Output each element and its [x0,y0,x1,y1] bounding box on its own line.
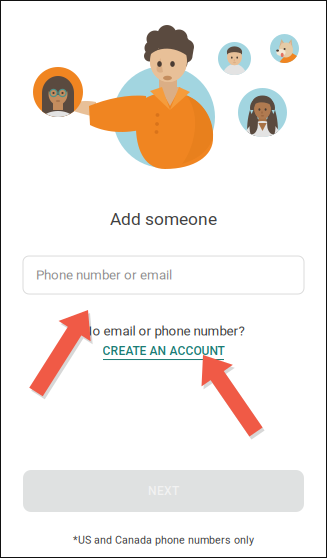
staticText: Add someone [110,209,217,229]
button[interactable]: CREATE AN ACCOUNT [0,344,327,360]
staticText: CREATE AN ACCOUNT [102,344,224,358]
button[interactable]: Phone number or email [23,256,304,294]
staticText: No email or phone number? [82,323,244,339]
staticText: *US and Canada phone numbers only [73,534,254,546]
staticText: Phone number or email [36,267,172,283]
staticText: NEXT [148,484,179,498]
